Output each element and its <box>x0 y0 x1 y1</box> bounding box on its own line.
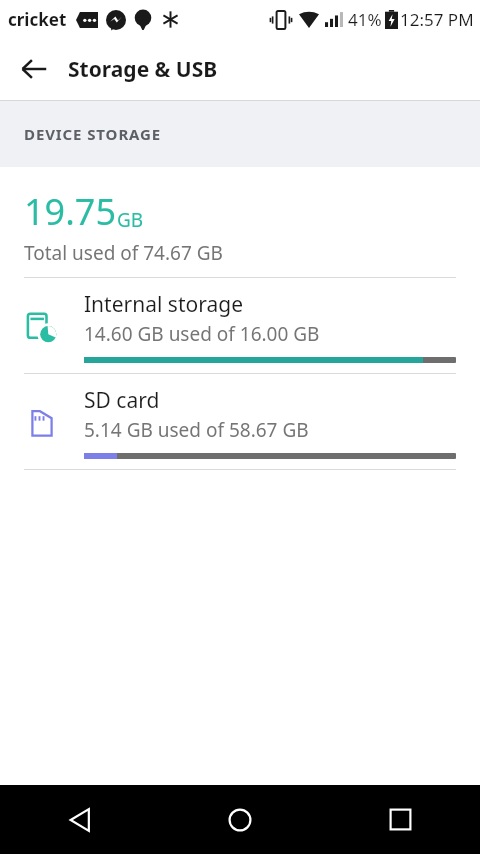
other: SD card <box>22 403 62 443</box>
staticText: Storage & USB <box>68 55 218 84</box>
staticText: 19.75 <box>24 187 117 236</box>
button[interactable]: Internal storage <box>0 278 480 373</box>
staticText: 14.60 GB used of 16.00 GB <box>84 321 320 347</box>
staticText: DEVICE STORAGE <box>24 124 162 144</box>
button[interactable]: Back <box>0 785 160 854</box>
staticText: 12:57 PM <box>400 8 474 31</box>
staticText: Total used of 74.67 GB <box>24 240 223 266</box>
staticText: 41% <box>348 8 382 31</box>
button[interactable]: Navigate up <box>10 45 58 93</box>
button[interactable]: Recent apps <box>320 785 480 854</box>
staticText: 5.14 GB used of 58.67 GB <box>84 417 309 443</box>
button[interactable]: Home <box>160 785 320 854</box>
other: Internal storage <box>22 307 62 347</box>
staticText: cricket <box>8 8 67 31</box>
button[interactable]: SD card <box>0 374 480 469</box>
staticText: Internal storage <box>84 290 243 319</box>
staticText: SD card <box>84 386 160 415</box>
staticText: GB <box>117 207 144 233</box>
